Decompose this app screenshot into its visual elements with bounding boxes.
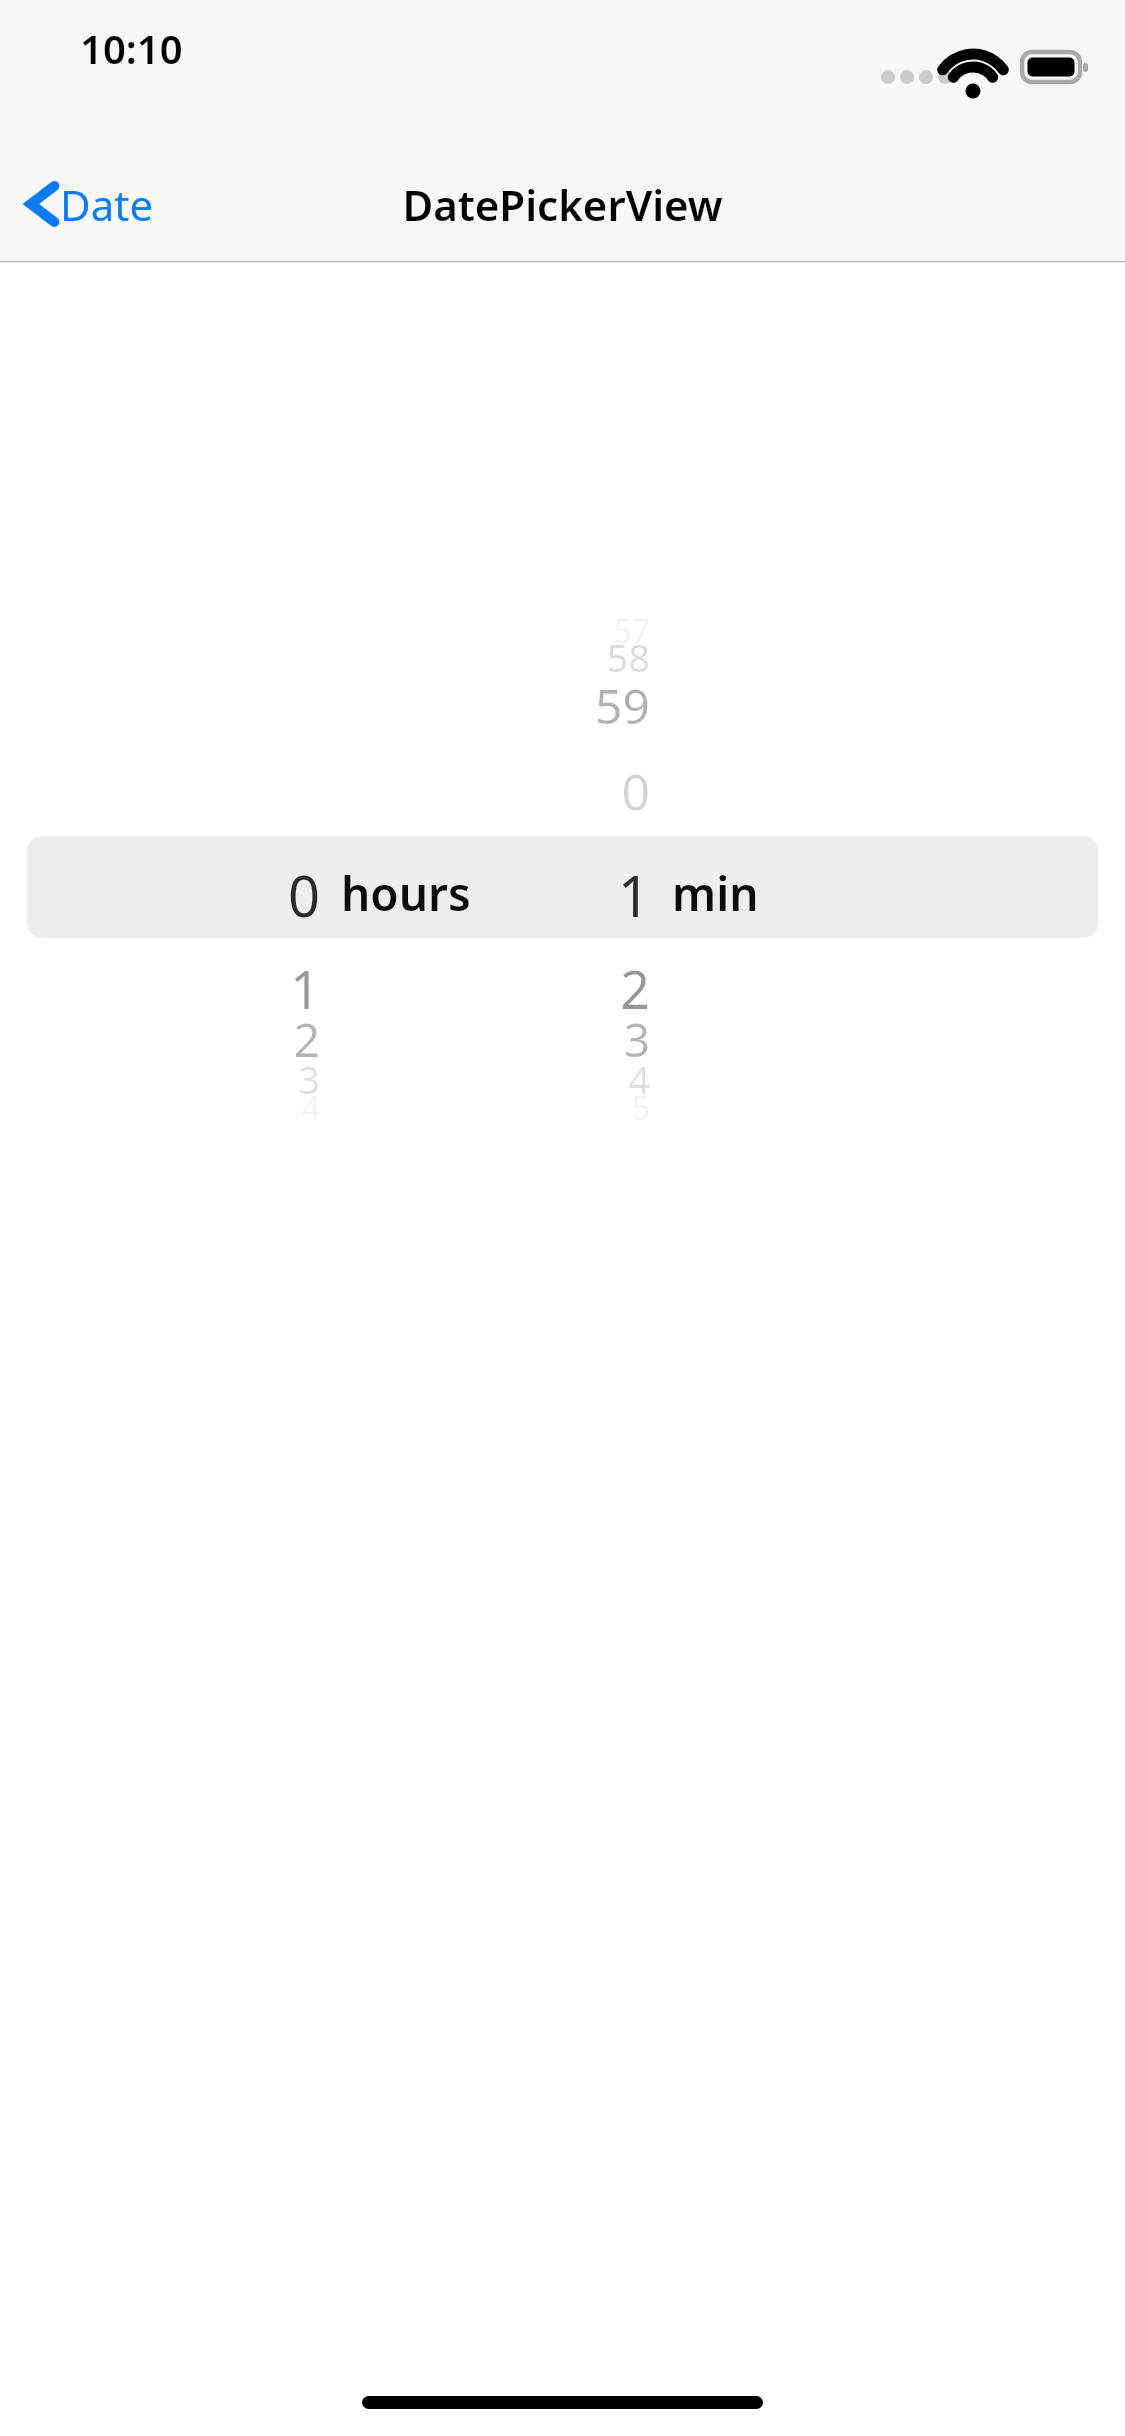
staticText: 1 [120, 953, 320, 1024]
button[interactable]: Back to Date [10, 152, 220, 252]
staticText: 4 [450, 1053, 650, 1105]
staticText: 3 [450, 1008, 650, 1071]
staticText: 3 [120, 1053, 320, 1105]
staticText: 10:10 [80, 21, 320, 75]
staticText: 58 [450, 631, 650, 683]
staticText: 0 [450, 757, 650, 825]
staticText: 1 [450, 857, 650, 933]
staticText: hours [341, 862, 641, 925]
staticText: 59 [450, 673, 650, 738]
staticText: min [672, 862, 972, 925]
staticText: 2 [450, 953, 650, 1024]
button[interactable] [27, 836, 1098, 938]
staticText: DatePickerView [0, 176, 1125, 233]
staticText: 57 [450, 609, 650, 653]
staticText: 0 [120, 857, 320, 933]
staticText: 2 [120, 1008, 320, 1071]
staticText: Date [60, 176, 230, 233]
